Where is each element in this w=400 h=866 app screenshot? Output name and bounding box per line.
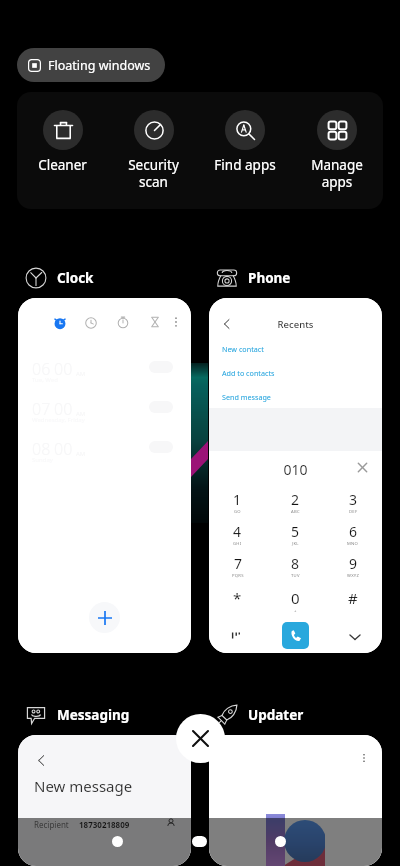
staticText: Clock [57,269,94,287]
button[interactable]: 6 [324,520,382,552]
staticText: # [348,588,358,608]
button[interactable]: 4 [209,520,266,552]
button[interactable]: 7 [209,552,266,584]
staticText: 5 [291,522,300,541]
button[interactable]: 3 [324,488,382,520]
staticText: Recipient [34,819,69,830]
staticText: Floating windows [48,57,151,74]
button[interactable]: Call [282,622,309,649]
staticText: + [294,608,297,614]
staticText: 7 [234,554,243,573]
staticText: ABC [291,509,300,515]
button[interactable]: New message [18,735,191,866]
button[interactable]: Updater [216,704,304,726]
staticText: New message [34,776,133,796]
button[interactable]: Find apps [199,92,291,209]
staticText: TUV [291,573,300,579]
staticText: * [233,588,242,608]
staticText: WXYZ [347,573,360,579]
button[interactable]: 1 [209,488,266,520]
staticText: 6 [349,522,358,541]
staticText: 4 [233,522,242,541]
staticText: 9 [349,554,358,573]
staticText: 010 [209,460,382,479]
button[interactable]: Clock [25,267,94,289]
staticText: JKL [292,541,299,547]
staticText: 1 [233,490,242,509]
button[interactable]: Phone [216,267,291,289]
staticText: Send message [222,392,271,402]
button[interactable]: 8 [266,552,324,584]
staticText: GO [234,509,241,515]
button[interactable]: 9 [324,552,382,584]
button[interactable]: Floating windows [17,48,165,82]
staticText: Security scan [108,156,199,191]
staticText: Recents [209,318,382,331]
staticText: Manage apps [291,156,383,191]
staticText: 3 [349,490,358,509]
staticText: Messaging [57,706,130,724]
staticText: GHI [233,541,242,547]
staticText: PQRS [232,573,244,579]
staticText: DEF [349,509,358,515]
staticText: New contact [222,344,264,354]
button[interactable]: Security scan [108,92,199,209]
button[interactable]: Recents [209,298,382,653]
staticText: 0 [291,588,300,608]
button[interactable]: # [324,584,382,616]
button[interactable]: 5 [266,520,324,552]
staticText: 2 [291,490,300,509]
button[interactable]: 2 [266,488,324,520]
staticText: Find apps [199,156,291,174]
button[interactable]: 0 [266,584,324,616]
button[interactable] [209,735,382,866]
button[interactable]: Cleaner [17,92,108,209]
staticText: Updater [248,706,304,724]
button[interactable]: Messaging [25,704,130,726]
button[interactable]: Close all [176,714,225,763]
staticText: Phone [248,269,291,287]
button[interactable]: Manage apps [291,92,383,209]
staticText: MNO [347,541,359,547]
button[interactable]: * [209,584,266,616]
staticText: 18730218809 [79,819,130,830]
button[interactable]: 06 [18,298,191,653]
staticText: 8 [291,554,300,573]
staticText: Cleaner [17,156,108,174]
button[interactable]: Add alarm [89,602,120,633]
staticText: Add to contacts [222,368,275,378]
